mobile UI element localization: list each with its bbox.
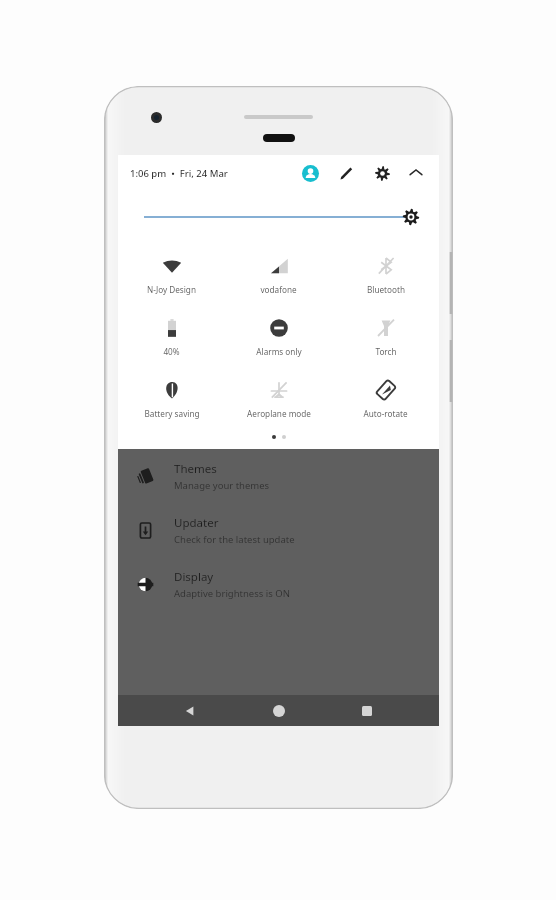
staticText: Updater <box>174 515 219 531</box>
button[interactable]: Settings <box>369 160 395 186</box>
button[interactable]: Collapse <box>403 160 429 186</box>
button[interactable]: Updater <box>118 503 439 557</box>
staticText: Torch <box>375 346 397 357</box>
staticText: N-Joy Design <box>147 284 196 295</box>
button[interactable]: Back <box>173 695 207 726</box>
staticText: 1:06 pm • Fri, 24 Mar <box>130 167 228 180</box>
staticText: vodafone <box>260 284 297 295</box>
staticText: Display <box>174 569 214 585</box>
staticText: Check for the latest update <box>174 533 295 546</box>
button[interactable]: Auto-rotate <box>332 377 439 421</box>
staticText: Alarms only <box>256 346 302 357</box>
button[interactable]: Brightness <box>118 191 439 243</box>
staticText: Battery saving <box>144 408 200 419</box>
staticText: Aeroplane mode <box>247 408 311 419</box>
staticText: Themes <box>174 461 217 477</box>
button[interactable]: N-Joy Design <box>118 253 225 297</box>
button[interactable]: Torch <box>332 315 439 359</box>
button[interactable]: Themes <box>118 449 439 503</box>
button[interactable]: vodafone <box>225 253 332 297</box>
button[interactable]: Recents <box>350 695 384 726</box>
button[interactable]: Battery saving <box>118 377 225 421</box>
staticText: Adaptive brightness is ON <box>174 587 290 600</box>
staticText: 40% <box>163 346 180 357</box>
staticText: Manage your themes <box>174 479 270 492</box>
button[interactable]: Bluetooth <box>332 253 439 297</box>
staticText: Auto-rotate <box>363 408 408 419</box>
button[interactable]: Home <box>262 695 296 726</box>
button[interactable]: Edit <box>333 160 359 186</box>
button[interactable]: Alarms only <box>225 315 332 359</box>
button[interactable]: 40% <box>118 315 225 359</box>
button[interactable]: Display <box>118 557 439 611</box>
staticText: Bluetooth <box>367 284 405 295</box>
button[interactable]: Aeroplane mode <box>225 377 332 421</box>
button[interactable]: User profile <box>297 160 323 186</box>
